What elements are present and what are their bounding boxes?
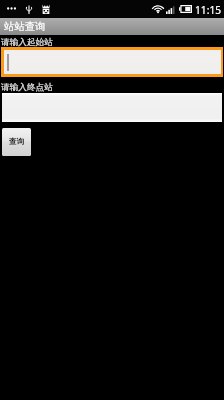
staticText: 站站查询 <box>4 20 46 33</box>
button[interactable] <box>4 50 221 74</box>
button[interactable] <box>2 93 222 122</box>
other: App notification <box>42 4 50 14</box>
other: USB connected <box>26 5 32 14</box>
staticText: 请输入终点站 <box>1 82 53 93</box>
staticText: 查询 <box>9 137 25 147</box>
other: Signal strength <box>166 5 176 14</box>
other: Notifications <box>7 7 17 10</box>
staticText: 11:15 <box>195 3 222 17</box>
button[interactable]: 查询 <box>2 128 31 156</box>
staticText: 请输入起始站 <box>1 37 53 48</box>
